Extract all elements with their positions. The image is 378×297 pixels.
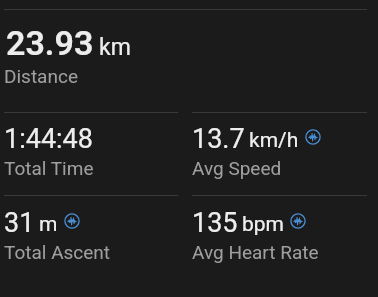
button[interactable]: Measured by heart-rate sensor	[305, 129, 321, 145]
button[interactable]: Measured by heart-rate sensor	[290, 213, 306, 229]
button[interactable]: 135	[192, 207, 367, 263]
staticText: 23.93	[6, 23, 94, 63]
button[interactable]: 1:44:48	[4, 123, 178, 179]
staticText: 13.7	[192, 123, 245, 155]
staticText: Total Time	[4, 157, 94, 179]
button[interactable]: 13.7	[192, 123, 367, 179]
staticText: Avg Speed	[192, 157, 282, 179]
staticText: Avg Heart Rate	[192, 241, 319, 263]
button[interactable]: 31	[4, 207, 178, 263]
button[interactable]: Measured by heart-rate sensor	[64, 213, 80, 229]
staticText: Distance	[4, 65, 78, 87]
staticText: 1:44:48	[4, 123, 93, 155]
staticText: 135	[192, 207, 238, 239]
button[interactable]: 23.93	[4, 23, 129, 87]
staticText: 31	[4, 207, 35, 239]
staticText: km/h	[249, 128, 299, 153]
staticText: m	[39, 212, 58, 237]
staticText: km	[99, 34, 131, 61]
staticText: Total Ascent	[4, 241, 111, 263]
staticText: bpm	[242, 212, 284, 237]
